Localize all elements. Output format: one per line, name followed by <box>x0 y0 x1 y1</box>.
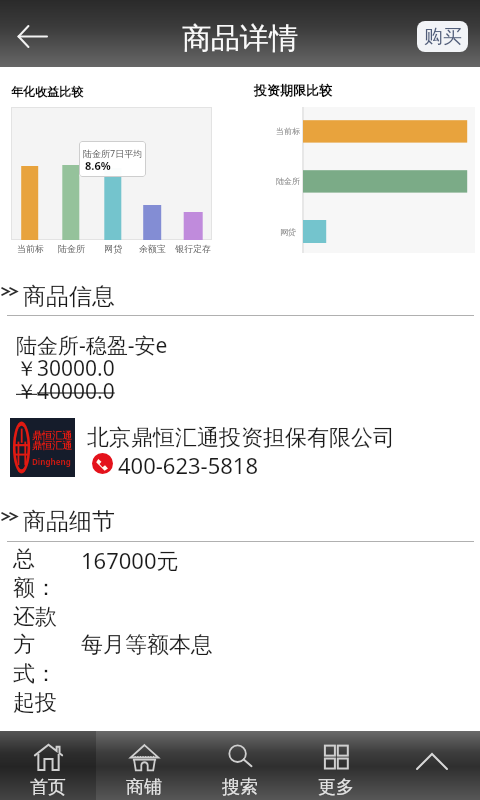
staticText: 网贷 <box>104 243 122 254</box>
staticText: 陆金所7日平均 <box>83 147 143 159</box>
staticText: 网贷 <box>280 227 296 237</box>
staticText: 陆金所-稳盈-安e <box>16 331 168 360</box>
staticText: 400-623-5818 <box>118 450 259 480</box>
staticText: 当前标 <box>17 243 44 254</box>
staticText: 167000元 <box>81 545 179 575</box>
staticText: Dingheng <box>32 456 71 467</box>
staticText: 银行定存 <box>175 243 211 254</box>
staticText: 购买 <box>424 25 462 49</box>
staticText: 总 <box>13 545 35 573</box>
button[interactable]: Back <box>7 10 59 62</box>
button[interactable]: Collapse <box>384 731 480 800</box>
staticText: 余额宝 <box>139 243 166 254</box>
staticText: 搜索 <box>222 776 258 799</box>
staticText: 商品细节 <box>23 507 115 536</box>
staticText: 方 <box>13 631 35 659</box>
staticText: 陆金所 <box>58 243 85 254</box>
staticText: 8.6% <box>85 158 111 173</box>
staticText: 还款 <box>13 603 57 631</box>
staticText: 鼎恒汇通 <box>32 429 72 442</box>
staticText: 商品详情 <box>182 20 298 57</box>
staticText: 投资期限比较 <box>254 82 332 98</box>
staticText: 当前标 <box>276 126 300 136</box>
staticText: 额： <box>13 574 57 602</box>
button[interactable]: 更多 <box>288 731 384 800</box>
staticText: 式： <box>13 660 57 688</box>
button[interactable]: 购买 <box>417 21 468 52</box>
staticText: ￥40000.0 <box>16 377 115 406</box>
staticText: 北京鼎恒汇通投资担保有限公司 <box>87 424 395 452</box>
staticText: 陆金所 <box>276 176 300 186</box>
staticText: 年化收益比较 <box>11 84 83 99</box>
button[interactable]: 商铺 <box>96 731 192 800</box>
staticText: 每月等额本息 <box>81 631 213 659</box>
staticText: 商铺 <box>126 776 162 799</box>
staticText: 更多 <box>318 776 354 799</box>
staticText: 商品信息 <box>23 282 115 311</box>
button[interactable]: 搜索 <box>192 731 288 800</box>
button[interactable]: 首页 <box>0 731 96 800</box>
staticText: 起投 <box>13 689 57 717</box>
staticText: ￥30000.0 <box>16 354 115 383</box>
staticText: 首页 <box>30 776 66 799</box>
staticText: 鼎恒汇通 <box>32 439 72 452</box>
